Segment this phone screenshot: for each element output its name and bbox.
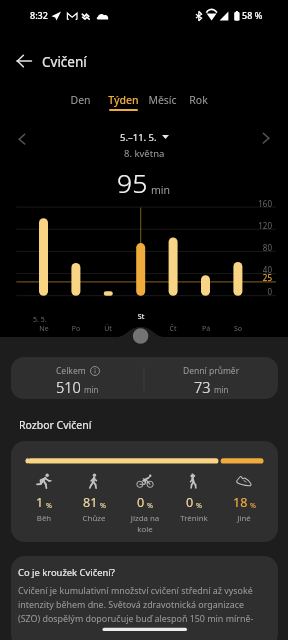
button[interactable]: So bbox=[222, 324, 254, 335]
staticText: % bbox=[46, 500, 52, 510]
staticText: 73 bbox=[194, 377, 211, 397]
staticText: 0 bbox=[248, 286, 272, 297]
staticText: 1 bbox=[36, 494, 44, 511]
staticText: min bbox=[214, 384, 229, 395]
staticText: 510 bbox=[56, 377, 81, 397]
button[interactable]: Co je kroužek Cvičení? bbox=[11, 556, 278, 640]
staticText: Denní průměr bbox=[183, 365, 240, 377]
staticText: Chůze bbox=[67, 513, 121, 524]
staticText: Trénink bbox=[167, 513, 221, 524]
staticText: % bbox=[196, 500, 202, 510]
staticText: Út bbox=[92, 324, 124, 334]
button[interactable]: Celkem bbox=[11, 357, 278, 399]
staticText: 18 bbox=[233, 494, 248, 511]
staticText: % bbox=[100, 500, 106, 510]
staticText: Po bbox=[60, 324, 92, 334]
staticText: Cvičení je kumulativní množství cvičení … bbox=[18, 584, 268, 625]
staticText: 120 bbox=[248, 220, 272, 231]
staticText: 8:32 bbox=[30, 9, 48, 21]
staticText: 8. května bbox=[124, 147, 165, 160]
staticText: 95 bbox=[117, 165, 148, 201]
staticText: min bbox=[84, 384, 99, 395]
staticText: Rok bbox=[189, 93, 208, 107]
staticText: 58 % bbox=[242, 9, 263, 21]
staticText: 160 bbox=[248, 198, 272, 209]
staticText: So bbox=[222, 324, 254, 334]
staticText: St bbox=[125, 312, 157, 322]
staticText: Čt bbox=[157, 324, 189, 334]
button[interactable]: Předchozí týden bbox=[11, 128, 33, 150]
button[interactable]: Týden bbox=[101, 90, 145, 111]
staticText: Den bbox=[70, 93, 91, 107]
staticText: 81 bbox=[83, 494, 98, 511]
button[interactable]: Další týden bbox=[255, 127, 277, 149]
staticText: 0 bbox=[186, 494, 194, 511]
button[interactable]: 1 bbox=[17, 472, 71, 534]
button[interactable]: Po bbox=[60, 324, 92, 335]
staticText: % bbox=[147, 500, 153, 510]
button[interactable]: 1 bbox=[11, 441, 278, 542]
staticText: Běh bbox=[17, 513, 71, 524]
button[interactable]: Út bbox=[92, 324, 124, 335]
staticText: 5.–11. 5. bbox=[120, 131, 157, 144]
button[interactable]: Den bbox=[58, 90, 102, 111]
staticText: 25 bbox=[248, 272, 272, 283]
staticText: Cvičení bbox=[42, 53, 87, 71]
staticText: min bbox=[151, 183, 171, 197]
staticText: Pá bbox=[190, 324, 222, 334]
button[interactable]: St bbox=[125, 312, 157, 323]
button[interactable]: Pá bbox=[190, 324, 222, 335]
button[interactable]: Rok bbox=[176, 90, 220, 111]
staticText: 5. 5. bbox=[33, 315, 47, 325]
staticText: Měsíc bbox=[148, 93, 177, 107]
staticText: 40 bbox=[248, 264, 272, 275]
staticText: Jiné bbox=[217, 513, 271, 524]
button[interactable]: 0 bbox=[118, 472, 172, 534]
staticText: Celkem bbox=[56, 365, 86, 377]
staticText: Rozbor Cvičení bbox=[19, 418, 92, 432]
staticText: Jízda na kole bbox=[118, 513, 172, 534]
button[interactable]: 18 bbox=[217, 472, 271, 534]
button[interactable]: 0 bbox=[167, 472, 221, 534]
button[interactable]: Měsíc bbox=[140, 90, 184, 111]
button[interactable]: 5.–11. 5. bbox=[120, 130, 169, 144]
staticText: % bbox=[250, 500, 256, 510]
button[interactable]: Čt bbox=[157, 324, 189, 335]
button[interactable]: 81 bbox=[67, 472, 121, 534]
staticText: Ne bbox=[28, 324, 60, 334]
staticText: 80 bbox=[248, 242, 272, 253]
staticText: 0 bbox=[137, 494, 145, 511]
button[interactable]: Ne bbox=[28, 324, 60, 335]
staticText: Co je kroužek Cvičení? bbox=[18, 566, 115, 579]
staticText: Týden bbox=[108, 93, 139, 107]
button[interactable]: Zpět bbox=[13, 49, 37, 73]
